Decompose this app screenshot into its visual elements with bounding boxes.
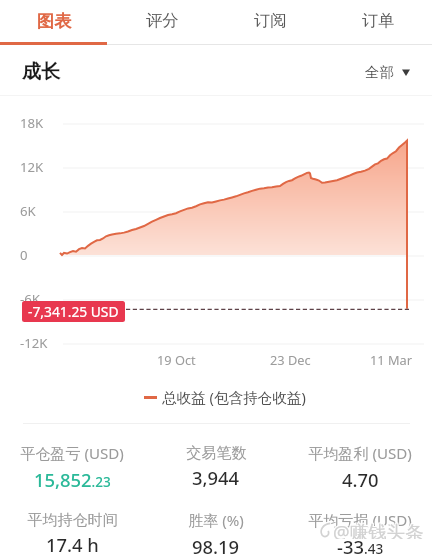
staticText: 总收益 (包含持仓收益): [162, 387, 306, 407]
button[interactable]: 平均持仓时间: [0, 510, 144, 557]
staticText: 15,852.23: [34, 467, 111, 492]
button[interactable]: 图表: [0, 0, 108, 41]
staticText: 订单: [362, 10, 395, 31]
staticText: 订阅: [254, 10, 287, 31]
staticText: 成长: [22, 60, 60, 84]
staticText: @赚钱头条: [334, 519, 425, 539]
staticText: 4.70: [342, 467, 379, 492]
staticText: 17.4 h: [46, 532, 99, 557]
staticText: 19 Oct: [157, 351, 196, 368]
staticText: -33.43: [337, 534, 384, 559]
staticText: 98.19: [192, 534, 240, 559]
staticText: 交易笔数: [186, 443, 247, 462]
staticText: @赚钱头条: [333, 520, 424, 540]
staticText: @赚钱头条: [334, 520, 425, 540]
staticText: 胜率 (%): [188, 510, 244, 531]
staticText: 11 Mar: [370, 351, 413, 368]
button[interactable]: 平仓盈亏 (USD): [0, 443, 144, 492]
staticText: @赚钱头条: [332, 519, 423, 539]
button[interactable]: 评分: [108, 0, 216, 41]
staticText: -6K: [20, 290, 40, 308]
staticText: 评分: [146, 10, 179, 31]
staticText: 18K: [20, 114, 44, 132]
staticText: -12K: [20, 334, 48, 352]
button[interactable]: 订单: [324, 0, 432, 41]
button[interactable]: 交易笔数: [144, 443, 288, 490]
staticText: -7,341.25 USD: [28, 302, 119, 321]
staticText: 平均亏损 (USD): [308, 510, 412, 531]
staticText: 0: [20, 246, 28, 264]
staticText: @赚钱头条: [333, 518, 424, 538]
staticText: 全部: [365, 63, 394, 81]
staticText: @赚钱头条: [332, 520, 423, 540]
staticText: @赚钱头条: [333, 519, 424, 539]
button[interactable]: 胜率 (%): [144, 510, 288, 559]
button[interactable]: 平均亏损 (USD): [288, 510, 432, 559]
staticText: 图表: [37, 10, 72, 32]
staticText: 平均盈利 (USD): [308, 443, 412, 464]
staticText: 平均持仓时间: [27, 510, 118, 529]
staticText: @赚钱头条: [332, 518, 423, 538]
staticText: @赚钱头条: [334, 518, 425, 538]
staticText: 12K: [20, 158, 44, 176]
button[interactable]: 全部: [365, 63, 410, 81]
staticText: 3,944: [192, 465, 240, 490]
staticText: 6K: [20, 202, 36, 220]
button[interactable]: 平均盈利 (USD): [288, 443, 432, 492]
staticText: 平仓盈亏 (USD): [20, 443, 124, 464]
button[interactable]: 订阅: [216, 0, 324, 41]
staticText: 23 Dec: [270, 351, 311, 368]
